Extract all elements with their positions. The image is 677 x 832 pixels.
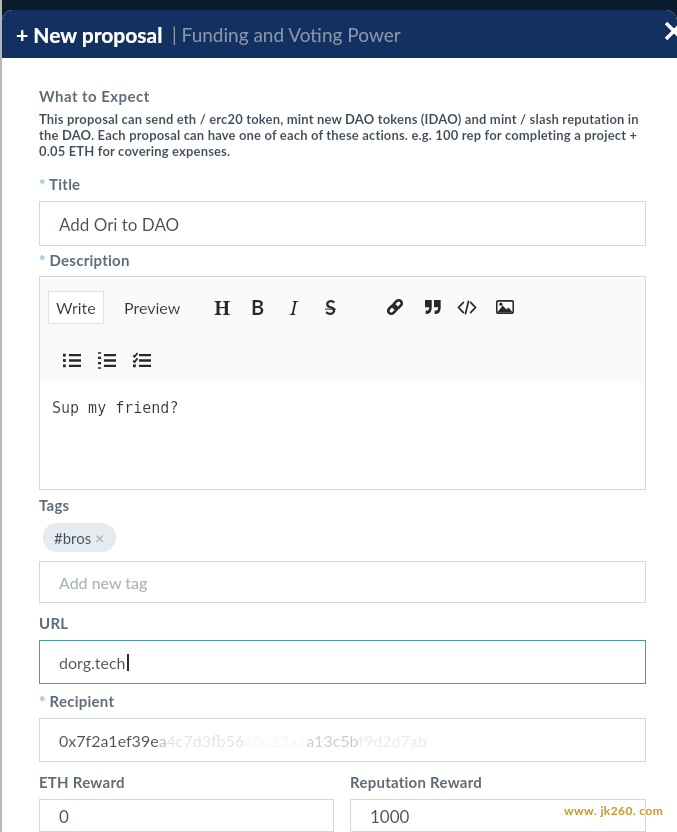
button[interactable]: Add new tag bbox=[39, 561, 646, 603]
button[interactable]: I bbox=[280, 293, 308, 321]
button[interactable]: 1000 bbox=[350, 799, 646, 832]
staticText: This proposal can send eth / erc20 token… bbox=[39, 111, 639, 159]
button[interactable]: #bros × bbox=[43, 523, 116, 552]
staticText: www. jk260. com bbox=[564, 803, 664, 817]
staticText: Tags bbox=[39, 496, 70, 514]
button[interactable]: Add Ori to DAO bbox=[39, 201, 646, 246]
staticText: H bbox=[214, 294, 231, 321]
button[interactable]: Write bbox=[48, 291, 104, 324]
staticText: * Description bbox=[39, 251, 130, 269]
button[interactable]: Sup my friend? bbox=[39, 382, 646, 490]
staticText: * Title bbox=[39, 175, 81, 193]
staticText: Add Ori to DAO bbox=[59, 214, 180, 234]
staticText: S bbox=[325, 295, 336, 319]
button[interactable]: 0 bbox=[39, 799, 334, 832]
staticText: 0 bbox=[59, 806, 69, 826]
button[interactable]: Quote bbox=[419, 293, 447, 321]
button[interactable]: Insert link bbox=[382, 294, 408, 320]
button[interactable]: Task list bbox=[128, 347, 156, 373]
staticText: | Funding and Voting Power bbox=[172, 23, 401, 46]
staticText: 1000 bbox=[370, 806, 410, 826]
staticText: I bbox=[290, 294, 298, 321]
staticText: URL bbox=[39, 614, 69, 632]
staticText: What to Expect bbox=[39, 87, 150, 105]
staticText: + New proposal bbox=[16, 22, 163, 47]
button[interactable]: H bbox=[208, 293, 236, 321]
staticText: ETH Reward bbox=[39, 773, 125, 791]
staticText: Write bbox=[56, 298, 96, 317]
button[interactable]: S bbox=[316, 293, 344, 321]
button[interactable]: Preview bbox=[115, 291, 189, 324]
staticText: dorg.tech bbox=[59, 653, 126, 672]
staticText: * Recipient bbox=[39, 692, 115, 710]
staticText: Add new tag bbox=[59, 573, 148, 592]
staticText: Sup my friend? bbox=[52, 399, 179, 416]
staticText: Preview bbox=[124, 298, 181, 317]
button[interactable]: B bbox=[244, 293, 272, 321]
button[interactable]: Close bbox=[655, 12, 677, 50]
staticText: B bbox=[251, 295, 265, 319]
button[interactable]: Insert image bbox=[491, 293, 519, 321]
staticText: 0x7f2a1ef39ea4c7d3fb56e8e23a1a13c5bf9d2d… bbox=[59, 731, 427, 750]
button[interactable]: 0x7f2a1ef39ea4c7d3fb56e8e23a1a13c5bf9d2d… bbox=[39, 718, 646, 762]
button[interactable]: Bulleted list bbox=[58, 347, 86, 373]
staticText: #bros × bbox=[54, 528, 105, 547]
button[interactable]: Numbered list bbox=[93, 347, 121, 373]
button[interactable]: Code block bbox=[453, 293, 481, 321]
staticText: Reputation Reward bbox=[350, 773, 483, 791]
button[interactable]: dorg.tech bbox=[39, 640, 646, 684]
